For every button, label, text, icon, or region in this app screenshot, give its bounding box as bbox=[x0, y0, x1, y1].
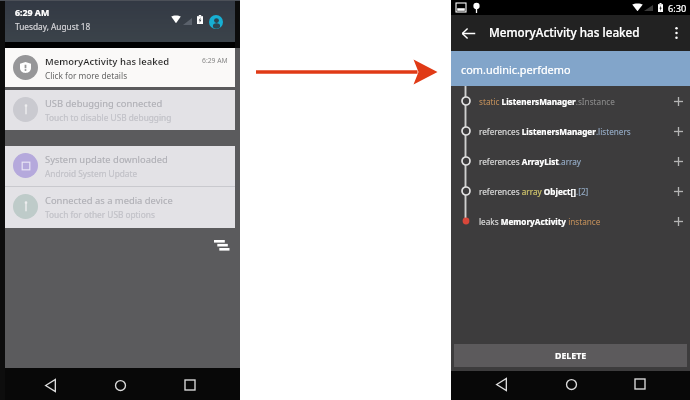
staticText: leaks MemoryActivity instance bbox=[479, 216, 601, 227]
button[interactable]: Back bbox=[454, 19, 482, 47]
button[interactable]: USB debugging connected bbox=[5, 90, 235, 130]
staticText: Connected as a media device bbox=[45, 194, 173, 207]
button[interactable]: Connected as a media device bbox=[5, 187, 235, 228]
button[interactable]: DELETE bbox=[454, 344, 687, 367]
button[interactable]: Expand bbox=[666, 146, 690, 176]
staticText: Tuesday, August 18 bbox=[15, 21, 91, 32]
button[interactable]: Expand bbox=[666, 86, 690, 116]
button[interactable]: Home bbox=[557, 370, 585, 398]
staticText: 6:30 bbox=[668, 2, 687, 15]
button[interactable]: Back bbox=[36, 371, 64, 399]
button[interactable]: references ArrayList.array bbox=[451, 146, 690, 176]
staticText: Android System Update bbox=[45, 168, 138, 179]
button[interactable]: Back bbox=[487, 370, 515, 398]
staticText: static ListenersManager.sInstance bbox=[479, 96, 615, 107]
staticText: System update downloaded bbox=[45, 153, 168, 166]
button[interactable]: Expand bbox=[666, 206, 690, 236]
button[interactable]: MemoryActivity has leaked bbox=[5, 48, 235, 87]
button[interactable]: System update downloaded bbox=[5, 146, 235, 186]
button[interactable]: Clear all notifications bbox=[210, 234, 234, 256]
staticText: references array Object[].[2] bbox=[479, 186, 589, 197]
staticText: references ListenersManager.listeners bbox=[479, 126, 631, 137]
button[interactable]: More options bbox=[662, 19, 690, 47]
button[interactable]: references ListenersManager.listeners bbox=[451, 116, 690, 146]
button[interactable]: references array Object[].[2] bbox=[451, 176, 690, 206]
button[interactable]: Expand bbox=[666, 116, 690, 146]
staticText: Touch to disable USB debugging bbox=[45, 112, 172, 123]
staticText: 6:29 AM bbox=[202, 56, 228, 65]
staticText: Click for more details bbox=[45, 70, 128, 81]
button[interactable]: Expand bbox=[666, 176, 690, 206]
button[interactable]: User profile bbox=[209, 15, 223, 29]
button[interactable]: Home bbox=[106, 371, 134, 399]
button[interactable]: com.udinic.perfdemo bbox=[451, 51, 690, 86]
button[interactable]: leaks MemoryActivity instance bbox=[451, 206, 690, 236]
staticText: com.udinic.perfdemo bbox=[461, 62, 571, 77]
button[interactable]: Recents bbox=[176, 371, 204, 399]
staticText: USB debugging connected bbox=[45, 97, 163, 110]
button[interactable]: static ListenersManager.sInstance bbox=[451, 86, 690, 116]
staticText: MemoryActivity has leaked bbox=[45, 55, 170, 68]
staticText: references ArrayList.array bbox=[479, 156, 582, 167]
staticText: 6:29 AM bbox=[15, 7, 50, 19]
staticText: MemoryActivity has leaked bbox=[489, 24, 640, 40]
button[interactable]: Recents bbox=[626, 370, 654, 398]
staticText: Touch for other USB options bbox=[45, 209, 155, 220]
staticText: DELETE bbox=[555, 350, 587, 362]
